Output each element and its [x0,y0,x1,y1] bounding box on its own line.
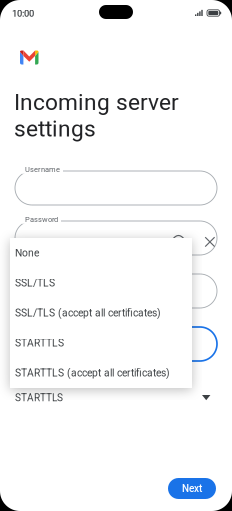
staticText: STARTTLS [15,337,64,349]
staticText: SSL/TLS (accept all certificates) [15,307,161,319]
button[interactable]: STARTTLS [10,328,192,358]
button[interactable]: SSL/TLS (accept all certificates) [10,298,192,328]
staticText: None [15,247,39,259]
button[interactable]: Show password [172,232,186,242]
staticText: STARTTLS (accept all certificates) [15,367,170,379]
button[interactable]: Next [168,478,216,499]
button[interactable]: Clear [204,236,217,249]
staticText: Username [25,165,60,174]
staticText: Next [182,483,202,494]
button[interactable]: SSL/TLS [10,268,192,298]
staticText: Password [25,215,58,224]
staticText: SSL/TLS [15,277,55,289]
staticText: 10:00 [12,8,34,19]
button[interactable]: STARTTLS (accept all certificates) [10,358,192,388]
staticText: STARTTLS [15,392,63,404]
button[interactable]: None [10,238,192,268]
staticText: Incoming server settings [14,89,179,142]
